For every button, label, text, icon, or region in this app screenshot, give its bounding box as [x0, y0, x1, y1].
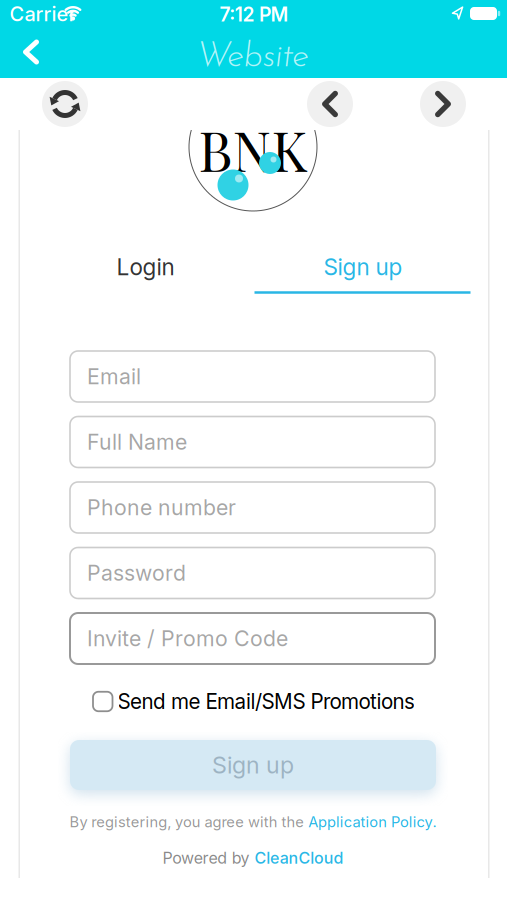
button[interactable] [307, 81, 353, 127]
staticText: Password [87, 560, 186, 586]
button[interactable]: Send me Email/SMS Promotions [19, 688, 489, 714]
staticText: Send me Email/SMS Promotions [117, 689, 415, 714]
button[interactable]: Login [36, 245, 255, 289]
staticText: Phone number [87, 495, 236, 520]
staticText: Sign up [212, 751, 294, 779]
staticText: CleanCloud [254, 848, 344, 868]
button[interactable]: CleanCloud [254, 848, 344, 868]
staticText: Carrier [9, 2, 76, 26]
staticText: By registering, you agree with the [70, 813, 308, 831]
staticText: Website [197, 40, 309, 75]
staticText: Email [87, 364, 141, 389]
button[interactable] [9, 30, 53, 74]
button[interactable] [420, 81, 466, 127]
button[interactable]: Sign up [253, 245, 472, 289]
staticText: Login [116, 253, 174, 281]
button[interactable]: Application Policy. [308, 813, 436, 831]
staticText: 7:12 PM [219, 3, 289, 26]
staticText: Full Name [87, 429, 187, 455]
staticText: Application Policy. [308, 813, 436, 831]
staticText: BNK [198, 113, 307, 185]
staticText: Sign up [323, 253, 402, 281]
button[interactable]: Sign up [70, 740, 436, 790]
staticText: Powered by [162, 848, 254, 868]
button[interactable] [42, 81, 88, 127]
staticText: Invite / Promo Code [87, 626, 288, 651]
